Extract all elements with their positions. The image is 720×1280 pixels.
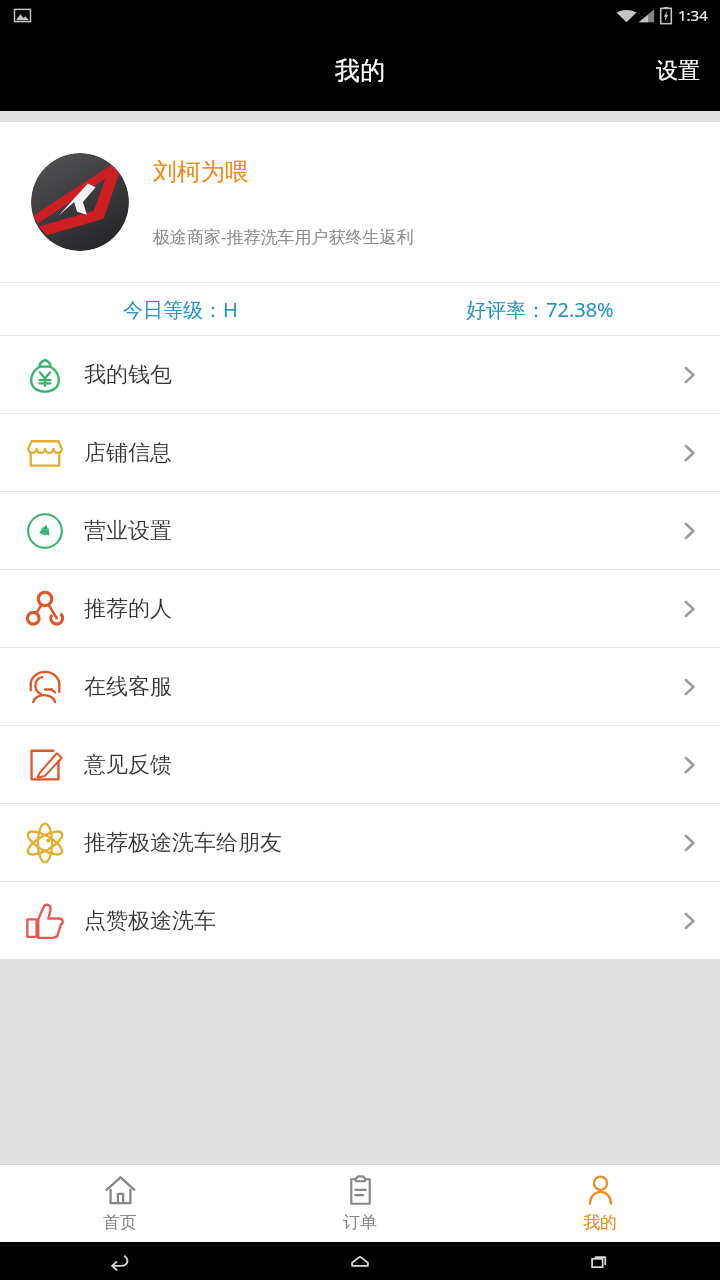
staticText: 在线客服 <box>84 673 172 701</box>
staticText: 我的 <box>335 55 385 86</box>
button[interactable]: 在线客服 <box>0 648 720 725</box>
staticText: 意见反馈 <box>84 751 172 779</box>
staticText: 推荐极途洗车给朋友 <box>84 829 282 857</box>
staticText: 订单 <box>343 1212 377 1233</box>
staticText: 设置 <box>656 57 700 85</box>
button[interactable]: 刘柯为喂 <box>0 122 720 282</box>
staticText: 今日等级：H <box>123 296 238 323</box>
staticText: 点赞极途洗车 <box>84 907 216 935</box>
button[interactable]: 首页 <box>0 1165 240 1242</box>
button[interactable]: 推荐的人 <box>0 570 720 647</box>
staticText: 店铺信息 <box>84 439 172 467</box>
button[interactable]: 营业设置 <box>0 492 720 569</box>
staticText: 我的钱包 <box>84 361 172 389</box>
staticText: 好评率：72.38% <box>466 296 614 323</box>
staticText: 营业设置 <box>84 517 172 545</box>
button[interactable]: 设置 <box>636 41 720 101</box>
staticText: 刘柯为喂 <box>153 157 249 187</box>
button[interactable]: 意见反馈 <box>0 726 720 803</box>
button[interactable]: 订单 <box>240 1165 480 1242</box>
button[interactable]: 推荐极途洗车给朋友 <box>0 804 720 881</box>
button[interactable]: 我的钱包 <box>0 336 720 413</box>
button[interactable]: Back <box>109 1250 131 1272</box>
staticText: 1:34 <box>678 5 708 25</box>
staticText: 我的 <box>583 1212 617 1233</box>
staticText: 极途商家-推荐洗车用户获终生返利 <box>153 225 414 248</box>
button[interactable]: Recents <box>589 1250 611 1272</box>
staticText: 推荐的人 <box>84 595 172 623</box>
button[interactable]: 店铺信息 <box>0 414 720 491</box>
button[interactable]: 我的 <box>480 1165 720 1242</box>
staticText: 首页 <box>103 1212 137 1233</box>
button[interactable]: 点赞极途洗车 <box>0 882 720 959</box>
button[interactable]: Home <box>349 1250 371 1272</box>
